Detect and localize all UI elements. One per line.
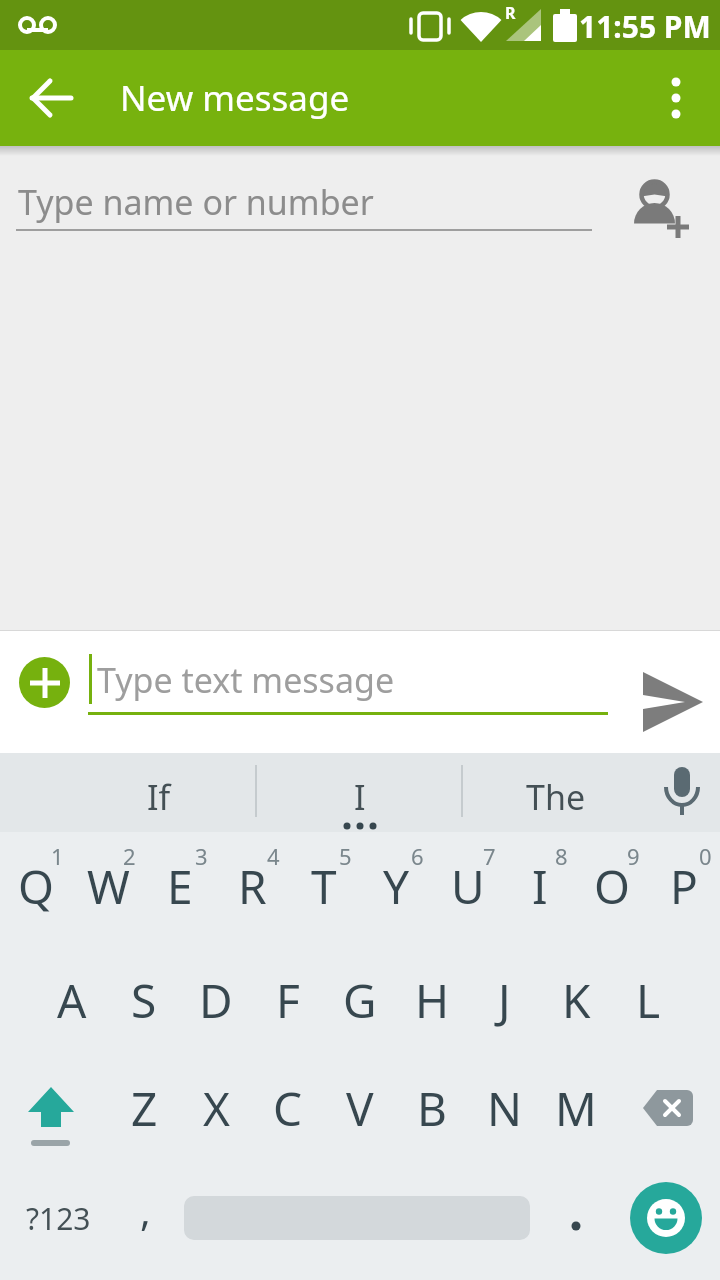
button[interactable]: O bbox=[576, 836, 648, 936]
button[interactable] bbox=[19, 657, 70, 708]
staticText: U bbox=[451, 855, 485, 918]
staticText: I bbox=[532, 855, 548, 918]
staticText: Q bbox=[18, 855, 54, 918]
staticText: Z bbox=[131, 1077, 158, 1140]
staticText: 0 bbox=[699, 841, 712, 871]
button[interactable]: Type text message bbox=[88, 640, 608, 740]
staticText: New message bbox=[120, 74, 350, 122]
staticText: D bbox=[199, 969, 233, 1032]
button[interactable]: Type name or number bbox=[0, 182, 720, 282]
button[interactable]: H bbox=[396, 950, 468, 1050]
button[interactable]: K bbox=[540, 950, 612, 1050]
button[interactable] bbox=[20, 66, 84, 130]
staticText: 5 bbox=[339, 841, 352, 871]
staticText: P bbox=[670, 855, 698, 918]
button[interactable]: Y bbox=[360, 836, 432, 936]
staticText: S bbox=[131, 969, 157, 1032]
staticText: O bbox=[594, 855, 630, 918]
button[interactable]: Q bbox=[0, 836, 72, 936]
button[interactable]: M bbox=[540, 1058, 612, 1158]
button[interactable]: ?123 bbox=[16, 1168, 100, 1268]
button[interactable]: , bbox=[110, 1168, 180, 1268]
button[interactable]: J bbox=[468, 950, 540, 1050]
button[interactable] bbox=[646, 66, 706, 130]
staticText: 2 bbox=[123, 841, 136, 871]
button[interactable]: I bbox=[262, 761, 458, 832]
staticText: E bbox=[167, 855, 193, 918]
staticText: L bbox=[636, 969, 661, 1032]
button[interactable]: V bbox=[324, 1058, 396, 1158]
staticText: R bbox=[238, 855, 267, 918]
staticText: 8 bbox=[555, 841, 568, 871]
staticText: 9 bbox=[627, 841, 640, 871]
staticText: H bbox=[415, 969, 450, 1032]
button[interactable]: T bbox=[288, 836, 360, 936]
staticText: Type text message bbox=[97, 657, 395, 703]
staticText: ?123 bbox=[26, 1198, 91, 1239]
button[interactable] bbox=[620, 166, 710, 246]
button[interactable]: P bbox=[648, 836, 720, 936]
button[interactable]: F bbox=[252, 950, 324, 1050]
staticText: W bbox=[87, 855, 130, 918]
button[interactable]: U bbox=[432, 836, 504, 936]
staticText: X bbox=[203, 1077, 230, 1140]
staticText: , bbox=[140, 1183, 151, 1237]
button[interactable]: If bbox=[64, 761, 254, 832]
button[interactable] bbox=[623, 1058, 713, 1158]
staticText: I bbox=[354, 774, 366, 820]
staticText: 3 bbox=[195, 841, 208, 871]
button[interactable]: E bbox=[144, 836, 216, 936]
staticText: C bbox=[273, 1077, 303, 1140]
staticText: 4 bbox=[267, 841, 280, 871]
staticText: 11:55 PM bbox=[579, 6, 711, 47]
staticText: B bbox=[417, 1077, 447, 1140]
button[interactable]: The bbox=[468, 761, 644, 832]
staticText: V bbox=[346, 1077, 374, 1140]
button[interactable]: X bbox=[180, 1058, 252, 1158]
staticText: K bbox=[562, 969, 591, 1032]
button[interactable]: B bbox=[396, 1058, 468, 1158]
button[interactable]: N bbox=[468, 1058, 540, 1158]
button[interactable] bbox=[630, 1182, 702, 1254]
button[interactable]: A bbox=[36, 950, 108, 1050]
staticText: A bbox=[57, 969, 87, 1032]
staticText: 7 bbox=[483, 841, 496, 871]
button[interactable] bbox=[7, 1058, 95, 1158]
staticText: Type name or number bbox=[18, 179, 374, 225]
button[interactable]: R bbox=[216, 836, 288, 936]
button[interactable]: D bbox=[180, 950, 252, 1050]
button[interactable]: I bbox=[504, 836, 576, 936]
staticText: F bbox=[276, 969, 300, 1032]
staticText: The bbox=[526, 774, 586, 820]
staticText: M bbox=[555, 1077, 597, 1140]
staticText: G bbox=[343, 969, 377, 1032]
button[interactable]: W bbox=[72, 836, 144, 936]
staticText: T bbox=[311, 855, 337, 918]
staticText: If bbox=[147, 774, 171, 820]
staticText: R bbox=[505, 2, 516, 24]
staticText: Y bbox=[383, 855, 410, 918]
button[interactable] bbox=[650, 761, 714, 825]
staticText: 1 bbox=[51, 841, 64, 871]
staticText: J bbox=[498, 969, 511, 1032]
button[interactable] bbox=[566, 1168, 586, 1268]
button[interactable] bbox=[614, 666, 710, 736]
button[interactable]: S bbox=[108, 950, 180, 1050]
button[interactable]: G bbox=[324, 950, 396, 1050]
staticText: N bbox=[487, 1077, 522, 1140]
button[interactable]: C bbox=[252, 1058, 324, 1158]
button[interactable]: L bbox=[612, 950, 684, 1050]
button[interactable]: Z bbox=[108, 1058, 180, 1158]
staticText: 6 bbox=[411, 841, 424, 871]
